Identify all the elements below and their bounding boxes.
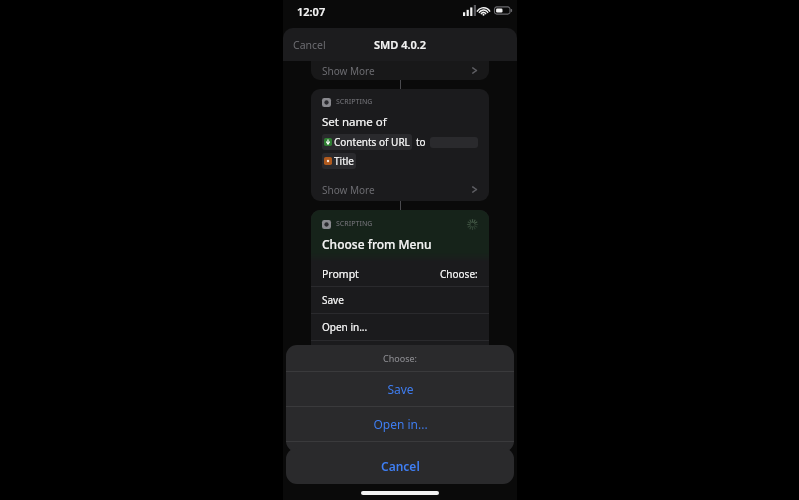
staticText: Cancel xyxy=(293,38,326,52)
button[interactable]: Save xyxy=(311,287,489,313)
button[interactable]: Open in... xyxy=(311,314,489,340)
staticText: Save xyxy=(322,293,344,307)
staticText: SCRIPTING xyxy=(336,219,373,229)
staticText: Choose from Menu xyxy=(322,236,432,252)
button[interactable]: Cancel xyxy=(283,32,336,58)
button[interactable]: SCRIPTING xyxy=(311,89,489,201)
button[interactable]: Title xyxy=(322,153,356,169)
staticText: 12:07 xyxy=(297,4,326,19)
button[interactable]: Save xyxy=(286,372,514,406)
button[interactable]: Show More xyxy=(311,180,489,199)
staticText: SCRIPTING xyxy=(336,97,373,107)
staticText: Title xyxy=(334,154,354,168)
staticText: Prompt xyxy=(322,267,359,281)
staticText: Open in... xyxy=(373,416,428,432)
button[interactable]: SCRIPTING xyxy=(311,210,489,407)
staticText: Choose: xyxy=(440,267,478,281)
staticText: Contents of URL xyxy=(334,135,410,149)
staticText: Choose: xyxy=(383,352,417,364)
other: Home xyxy=(361,491,439,495)
staticText: Save xyxy=(387,381,414,397)
button[interactable]: Open in... xyxy=(286,407,514,441)
button[interactable]: Contents of URL xyxy=(322,134,412,150)
button[interactable]: Cancel xyxy=(286,448,514,484)
staticText: SMD 4.0.2 xyxy=(374,37,427,52)
button[interactable]: Show More xyxy=(311,61,489,80)
button[interactable]: Parse QS xyxy=(311,341,489,367)
staticText: Show More xyxy=(322,183,375,197)
staticText: Open in... xyxy=(322,320,368,334)
staticText: Set name of xyxy=(322,114,387,130)
staticText: Cancel xyxy=(381,458,420,474)
staticText: Show More xyxy=(322,64,375,78)
staticText: to xyxy=(416,135,426,149)
